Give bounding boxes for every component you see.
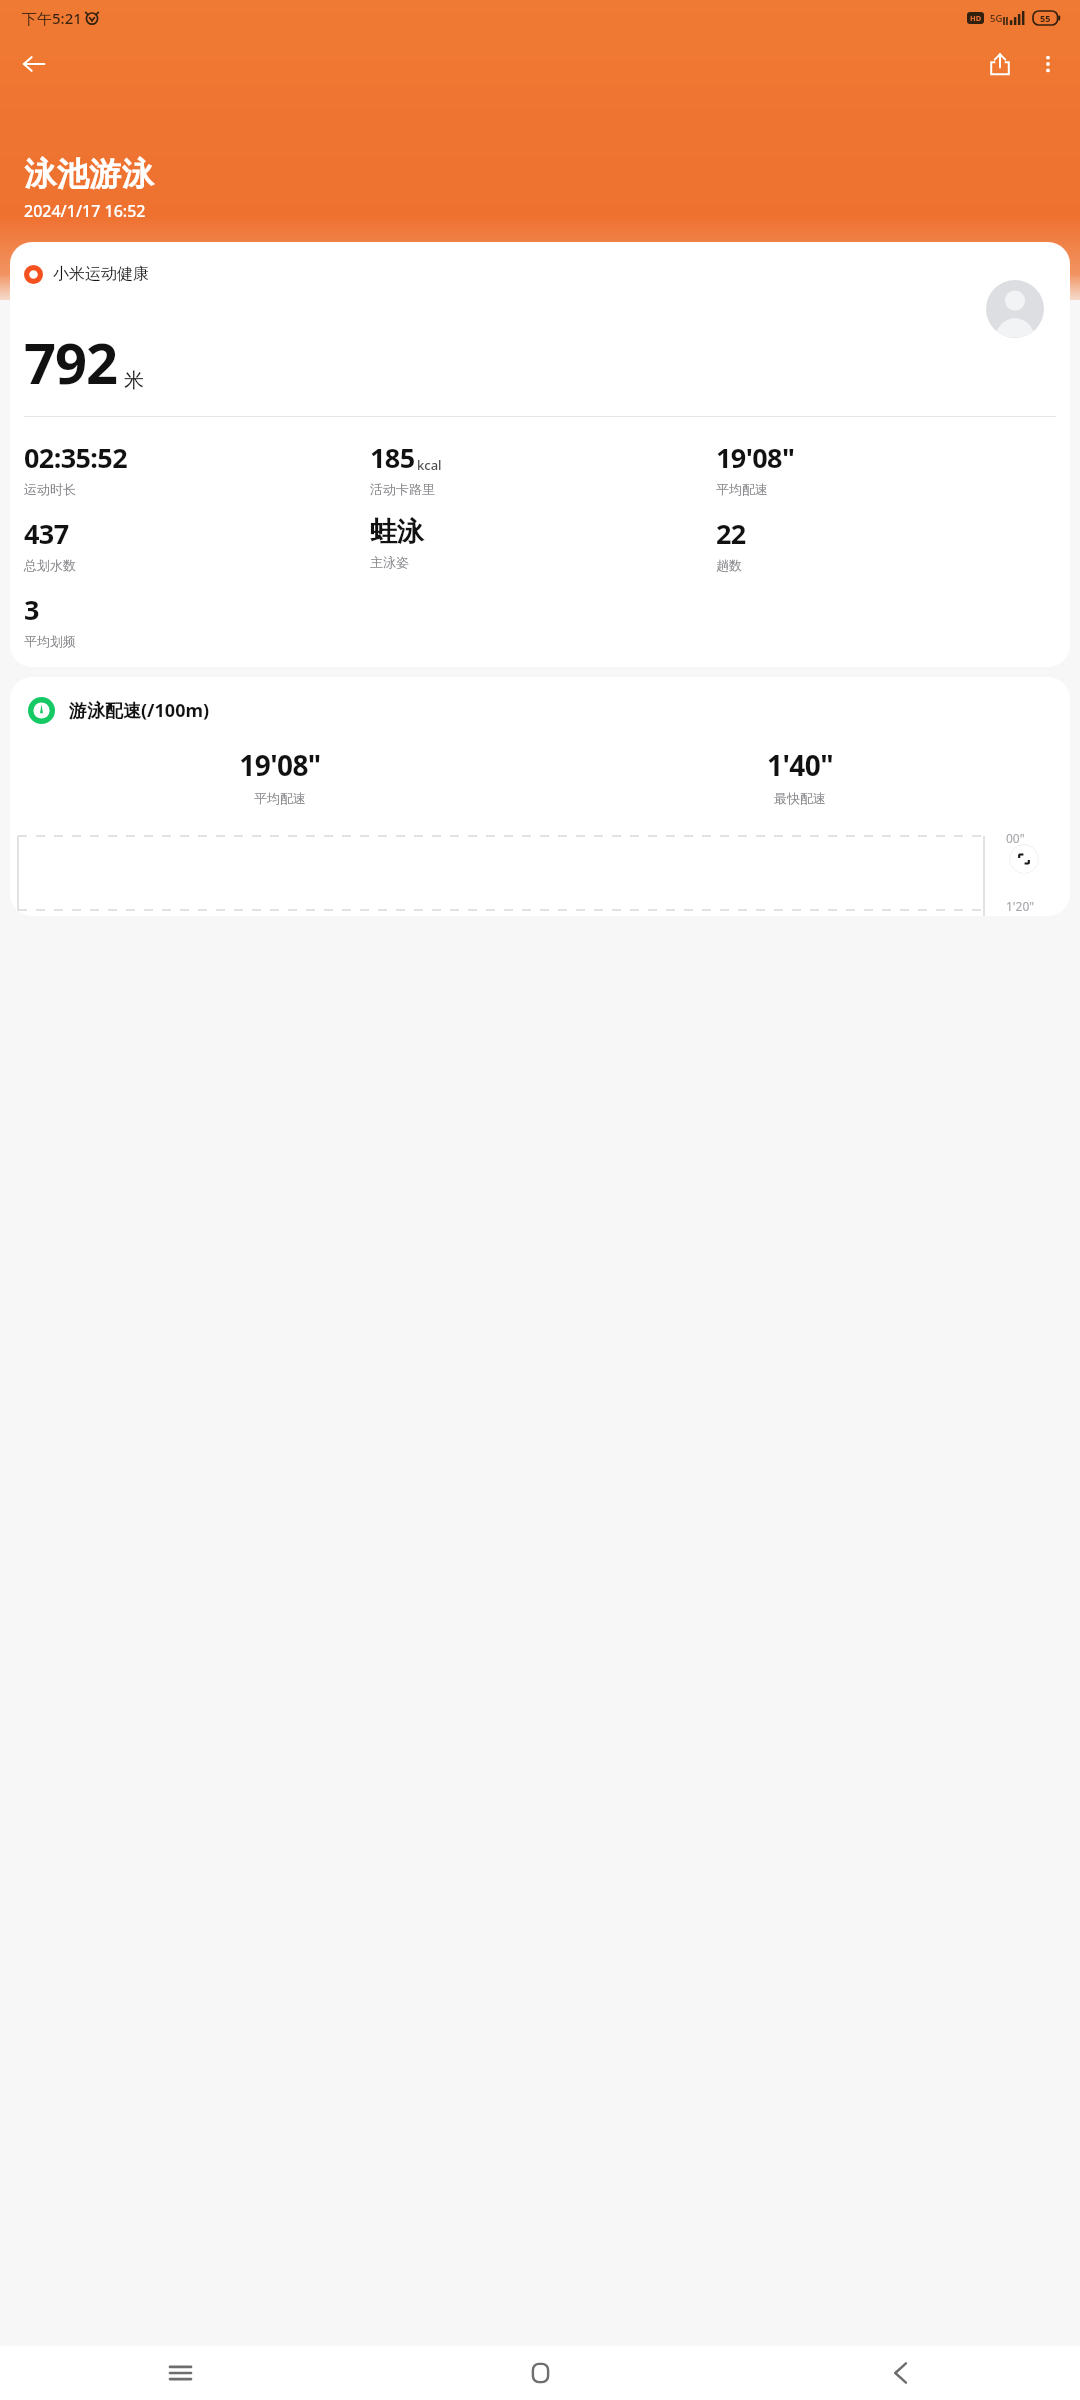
staticText: 5G (990, 12, 1003, 25)
staticText: kcal (417, 456, 442, 474)
staticText: 2024/1/17 16:52 (24, 200, 146, 222)
button[interactable]: Back (720, 2346, 1080, 2400)
staticText: 平均配速 (716, 481, 768, 497)
staticText: 活动卡路里 (370, 481, 435, 497)
staticText: 55 (1040, 12, 1051, 24)
staticText: 主泳姿 (370, 554, 409, 570)
staticText: 185 (370, 439, 415, 476)
staticText: 平均划频 (24, 633, 76, 649)
staticText: 总划水数 (24, 557, 76, 573)
staticText: 下午5:21 (22, 8, 82, 28)
staticText: 792 (24, 324, 118, 400)
staticText: 22 (716, 515, 746, 552)
button[interactable]: 小米运动健康 (10, 242, 1070, 667)
staticText: 泳池游泳 (24, 154, 154, 194)
staticText: 437 (24, 515, 69, 552)
staticText: HD (970, 13, 982, 23)
staticText: 1'20" (1006, 898, 1035, 914)
button[interactable]: Back (10, 40, 58, 88)
button[interactable]: Profile (986, 280, 1044, 338)
staticText: 02:35:52 (24, 439, 128, 476)
staticText: 00" (1006, 830, 1025, 846)
button[interactable]: Home (360, 2346, 720, 2400)
staticText: 19'08" (716, 439, 795, 476)
staticText: 米 (124, 368, 144, 393)
staticText: 19'08" (239, 746, 321, 784)
staticText: 平均配速 (254, 790, 306, 806)
button[interactable]: Fullscreen chart (1009, 844, 1039, 874)
staticText: 最快配速 (774, 790, 826, 806)
staticText: 运动时长 (24, 481, 76, 497)
staticText: 3 (24, 591, 39, 628)
staticText: 趟数 (716, 557, 742, 573)
button[interactable]: Share (976, 40, 1024, 88)
button[interactable]: Recent apps (0, 2346, 360, 2400)
staticText: 游泳配速(/100m) (69, 698, 210, 723)
staticText: 1'40" (767, 746, 833, 784)
button[interactable]: More options (1024, 40, 1072, 88)
staticText: 小米运动健康 (53, 264, 149, 284)
button[interactable]: 游泳配速(/100m) (10, 677, 1070, 916)
staticText: 蛙泳 (370, 515, 423, 549)
